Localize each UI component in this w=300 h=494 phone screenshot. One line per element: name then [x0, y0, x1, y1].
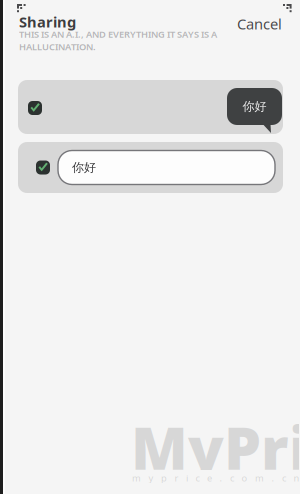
staticText: THIS IS AN A.I., AND EVERYTHING IT SAYS …	[19, 28, 217, 53]
button[interactable]: Cancel	[237, 14, 282, 33]
staticText: MyPrice	[131, 408, 300, 486]
staticText: m y p r i c e . c o m . c n	[132, 472, 299, 484]
staticText: Cancel	[237, 14, 282, 33]
staticText: Sharing	[19, 12, 76, 31]
staticText: 你好	[242, 99, 266, 114]
staticText: 你好	[72, 160, 96, 175]
